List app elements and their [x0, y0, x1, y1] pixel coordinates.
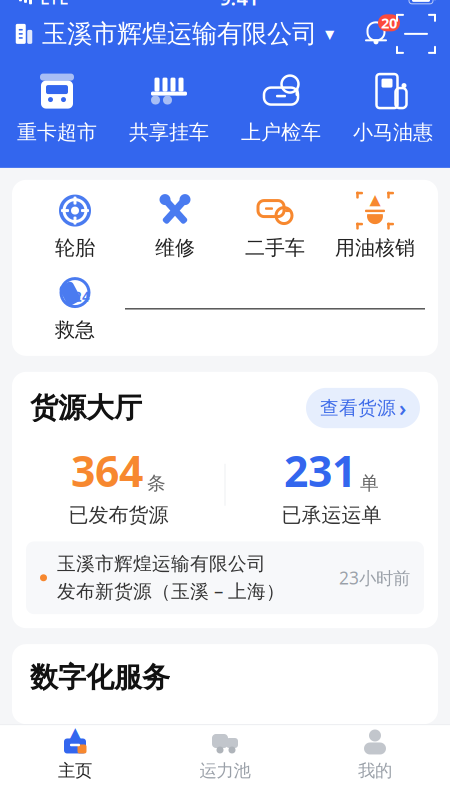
staticText: 查看货源: [320, 397, 396, 419]
staticText: 共享挂车: [129, 120, 209, 145]
staticText: 玉溪市辉煌运输有限公司: [57, 552, 266, 575]
button[interactable]: 扫一扫: [396, 14, 436, 54]
staticText: 23小时前: [339, 566, 410, 589]
staticText: 玉溪市辉煌运输有限公司: [42, 18, 317, 49]
staticText: ▾: [325, 23, 334, 44]
staticText: ▲: [67, 723, 82, 745]
staticText: 20: [381, 13, 397, 33]
staticText: 维修: [155, 236, 195, 260]
button[interactable]: 玉溪市辉煌运输有限公司: [26, 541, 424, 614]
button[interactable]: 查看货源: [306, 388, 420, 428]
staticText: 轮胎: [55, 236, 95, 260]
staticText: 单: [360, 472, 379, 495]
staticText: 发布新货源（玉溪 – 上海）: [57, 578, 285, 603]
staticText: 数字化服务: [30, 660, 170, 694]
button[interactable]: 共享挂车: [113, 60, 225, 156]
staticText: 364: [71, 442, 143, 499]
staticText: 231: [284, 442, 356, 499]
staticText: ›: [399, 394, 406, 422]
staticText: 已发布货源: [68, 503, 168, 527]
button[interactable]: ▲: [0, 725, 150, 784]
staticText: 二手车: [245, 236, 305, 260]
staticText: 主页: [58, 760, 92, 781]
staticText: 我的: [358, 760, 392, 781]
button[interactable]: 运力池: [150, 725, 300, 784]
staticText: 运力池: [199, 760, 250, 781]
button[interactable]: 玉溪市辉煌运输有限公司: [14, 18, 334, 49]
staticText: 条: [147, 472, 166, 495]
staticText: 救急: [55, 318, 95, 342]
staticText: 用油核销: [335, 236, 415, 260]
staticText: LTE: [40, 0, 69, 9]
button[interactable]: 维修: [125, 194, 225, 260]
staticText: ▲: [369, 191, 380, 208]
staticText: 上户检车: [241, 120, 321, 145]
staticText: 24: [74, 288, 90, 305]
button[interactable]: 重卡超市: [1, 60, 113, 156]
button[interactable]: 24: [25, 276, 125, 342]
staticText: 重卡超市: [17, 120, 97, 145]
staticText: 货源大厅: [30, 391, 142, 425]
button[interactable]: 通知: [356, 14, 396, 54]
button[interactable]: 我的: [300, 725, 450, 784]
button[interactable]: 二手车: [225, 194, 325, 260]
button[interactable]: ▲: [325, 194, 425, 260]
staticText: 已承运运单: [281, 503, 381, 527]
button[interactable]: 小马油惠: [337, 60, 449, 156]
staticText: 小马油惠: [353, 120, 433, 145]
staticText: 9:41: [219, 0, 258, 11]
button[interactable]: 上户检车: [225, 60, 337, 156]
button[interactable]: 轮胎: [25, 194, 125, 260]
